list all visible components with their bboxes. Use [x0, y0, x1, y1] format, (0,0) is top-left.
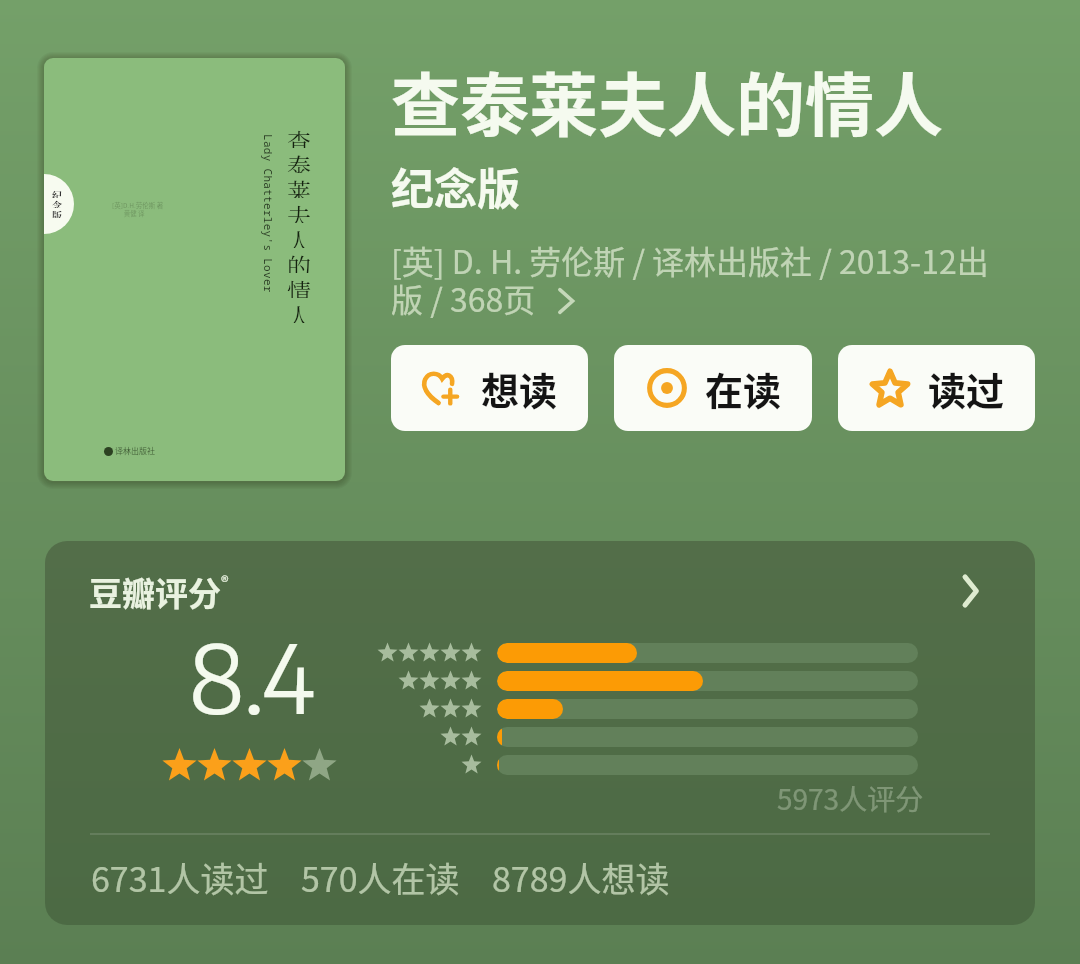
staticText: 念 — [52, 198, 62, 208]
staticText: 查泰莱夫人的情人 — [391, 51, 943, 151]
button[interactable]: More ratings — [941, 561, 1001, 621]
staticText: 5973人评分 — [777, 778, 924, 819]
staticText: 查 — [287, 123, 311, 148]
staticText: 莱 — [287, 173, 311, 198]
staticText: 豆瓣评分 — [89, 568, 221, 616]
staticText: Lady Chatterley's Lover — [261, 134, 276, 293]
staticText: 纪 — [52, 188, 62, 198]
staticText: 夫 — [287, 198, 311, 223]
staticText: 想读 — [481, 361, 558, 416]
staticText: [英] D. H. 劳伦斯 / 译林出版社 / 2013-12出版 / 368页 — [391, 237, 1034, 322]
staticText: 人 — [287, 223, 311, 248]
staticText: 的 — [287, 248, 311, 273]
staticText: 6731人读过 — [91, 853, 269, 902]
staticText: 译林出版社 — [115, 445, 155, 457]
staticText: ® — [221, 569, 229, 592]
button[interactable]: 豆瓣评分 — [45, 541, 1035, 925]
button[interactable]: 想读 — [391, 345, 588, 431]
button[interactable]: 在读 — [614, 345, 812, 431]
staticText: [英]D.H.劳伦斯 著 黄健 译 — [112, 200, 164, 218]
button[interactable]: 读过 — [838, 345, 1035, 431]
staticText: 泰 — [287, 148, 311, 173]
button[interactable]: 纪 — [44, 58, 345, 481]
staticText: 情 — [287, 273, 311, 298]
other: Book details — [555, 286, 577, 316]
staticText: 版 — [52, 208, 62, 218]
staticText: 8.4 — [189, 616, 315, 735]
staticText: 8789人想读 — [492, 853, 670, 902]
staticText: 570人在读 — [301, 853, 460, 902]
staticText: 读过 — [928, 361, 1005, 416]
staticText: 纪念版 — [391, 155, 520, 217]
staticText: 在读 — [705, 361, 782, 416]
staticText: 人 — [287, 298, 311, 323]
